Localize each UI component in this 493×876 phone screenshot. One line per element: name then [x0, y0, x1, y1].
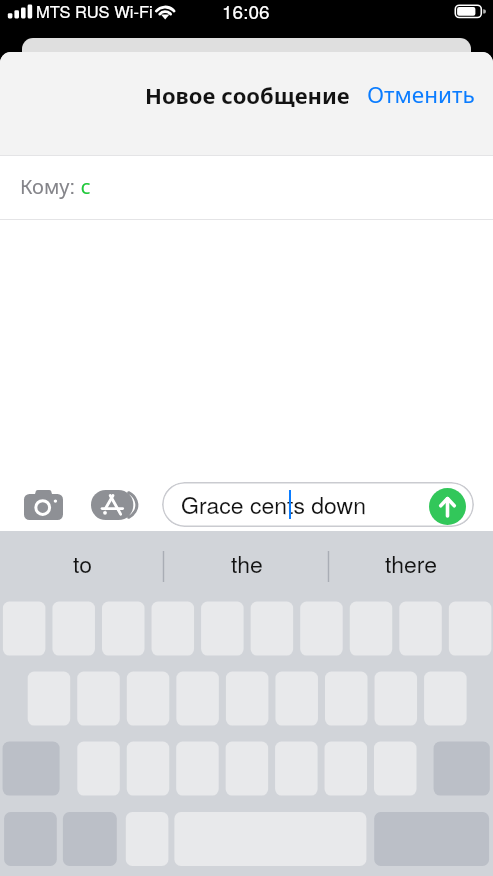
staticText: Grace cents down: [181, 488, 367, 521]
button[interactable]: Send: [429, 488, 466, 525]
button[interactable]: the: [164, 537, 329, 590]
staticText: MTS RUS Wi-Fi: [36, 0, 153, 23]
staticText: Новое сообщение: [145, 79, 350, 111]
button[interactable]: [0, 156, 493, 220]
staticText: Отменить: [367, 79, 475, 110]
staticText: there: [385, 547, 438, 580]
button[interactable]: Отменить: [367, 79, 475, 110]
button[interactable]: to: [0, 537, 164, 590]
staticText: to: [73, 547, 92, 580]
staticText: 16:06: [222, 0, 270, 24]
staticText: the: [231, 547, 263, 580]
button[interactable]: there: [329, 537, 493, 590]
button[interactable]: App Store: [91, 490, 138, 520]
staticText: Кому: с: [20, 171, 91, 200]
button[interactable]: Grace cents down: [162, 482, 474, 527]
button[interactable]: Camera: [24, 490, 63, 520]
